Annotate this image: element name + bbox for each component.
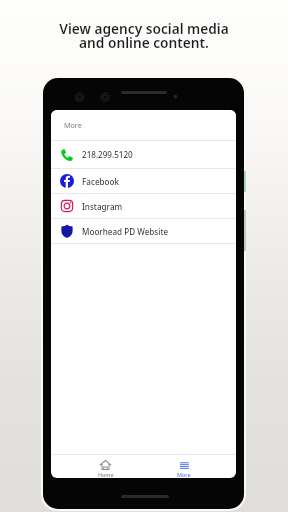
button[interactable]: Moorhead PD Website xyxy=(51,219,236,243)
button[interactable]: 218.299.5120 xyxy=(51,141,236,168)
staticText: More xyxy=(64,120,82,130)
staticText: View agency social media and online cont… xyxy=(59,19,229,52)
staticText: Moorhead PD Website xyxy=(82,226,169,237)
staticText: More xyxy=(177,471,191,478)
staticText: Home xyxy=(98,471,114,478)
button[interactable]: Instagram xyxy=(51,194,236,218)
staticText: Instagram xyxy=(82,201,123,212)
button[interactable]: More xyxy=(145,455,236,478)
staticText: Facebook xyxy=(82,176,119,187)
button[interactable]: Facebook xyxy=(51,169,236,193)
staticText: 218.299.5120 xyxy=(82,149,133,160)
button[interactable]: Home xyxy=(51,455,145,478)
